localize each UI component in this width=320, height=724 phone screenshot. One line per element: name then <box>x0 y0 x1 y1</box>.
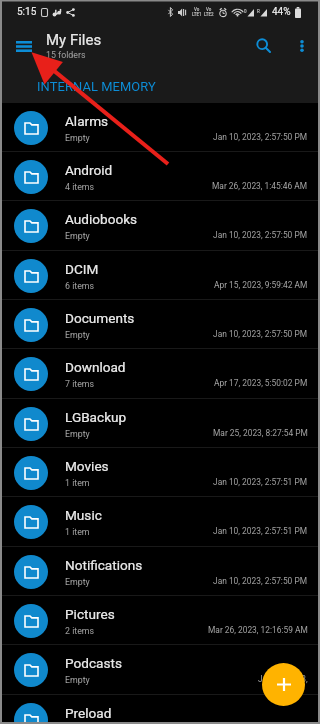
staticText: Empty <box>65 231 90 241</box>
staticText: Download <box>65 359 126 375</box>
staticText: My Files <box>46 31 102 49</box>
staticText: Jan 10, 2023, 2:57:51 PM <box>213 526 308 536</box>
staticText: Jan 10, 2023, <box>258 674 308 684</box>
staticText: 0 <box>244 9 247 14</box>
staticText: Apr 17, 2023, 5:50:02 PM <box>214 378 308 388</box>
staticText: Empty <box>65 330 90 340</box>
staticText: 15 folders <box>46 50 86 60</box>
staticText: Music <box>65 507 102 523</box>
staticText: LTE2 <box>204 12 214 17</box>
staticText: Vo <box>206 7 212 12</box>
staticText: Jan 10, 2023, 2:57:50 PM <box>213 329 308 339</box>
staticText: 1 item <box>65 478 90 488</box>
button[interactable]: Documents <box>0 300 320 349</box>
button[interactable]: Add <box>262 663 305 706</box>
button[interactable]: Android <box>0 152 320 201</box>
staticText: Empty <box>65 133 90 143</box>
staticText: Podcasts <box>65 655 122 671</box>
button[interactable]: Podcasts <box>0 645 320 695</box>
staticText: DCIM <box>65 261 99 277</box>
staticText: Vo <box>194 7 200 12</box>
staticText: 7 items <box>65 379 95 389</box>
staticText: 2 items <box>65 626 95 636</box>
staticText: Preload <box>65 705 112 721</box>
staticText: Jan 10, 2023, 2:57:50 PM <box>213 230 308 240</box>
staticText: 4 items <box>65 182 95 192</box>
staticText: Jan 10, 2023, 2:57:50 PM <box>213 576 308 586</box>
staticText: Movies <box>65 458 109 474</box>
staticText: Empty <box>65 675 90 685</box>
staticText: Mar 25, 2023, 8:27:54 PM <box>213 428 308 438</box>
staticText: Alarms <box>65 113 109 129</box>
button[interactable]: Preload <box>0 695 320 724</box>
button[interactable]: Open navigation drawer <box>5 24 42 70</box>
staticText: Mar 26, 2023, 12:16:59 AM <box>208 625 308 635</box>
staticText: Audiobooks <box>65 211 138 227</box>
button[interactable]: DCIM <box>0 251 320 300</box>
staticText: Empty <box>65 429 90 439</box>
staticText: Jan 10, 2023, 2:57:50 PM <box>213 132 308 142</box>
staticText: 1 item <box>65 527 90 537</box>
staticText: Android <box>65 162 113 178</box>
button[interactable]: Movies <box>0 448 320 497</box>
staticText: Jan 10, 2023, 2:57:51 PM <box>213 477 308 487</box>
button[interactable]: Music <box>0 497 320 547</box>
button[interactable]: Pictures <box>0 596 320 645</box>
staticText: 5:15 <box>17 6 37 18</box>
staticText: Empty <box>65 577 90 587</box>
staticText: LTE1 <box>192 12 202 17</box>
staticText: Documents <box>65 310 135 326</box>
staticText: Mar 26, 2023, 1:45:46 AM <box>212 181 308 191</box>
button[interactable]: Audiobooks <box>0 201 320 251</box>
staticText: INTERNAL MEMORY <box>37 79 156 94</box>
button[interactable]: Search <box>241 24 287 70</box>
staticText: 6 items <box>65 281 95 291</box>
button[interactable]: Notifications <box>0 547 320 596</box>
staticText: Notifications <box>65 557 143 573</box>
staticText: 44% <box>272 6 291 18</box>
staticText: Pictures <box>65 606 115 622</box>
button[interactable]: LGBackup <box>0 399 320 448</box>
button[interactable]: Alarms <box>0 103 320 152</box>
staticText: LGBackup <box>65 409 127 425</box>
button[interactable]: More options <box>287 24 317 70</box>
staticText: Apr 15, 2023, 9:59:42 AM <box>214 280 308 290</box>
staticText: R <box>257 9 260 14</box>
button[interactable]: Download <box>0 349 320 399</box>
